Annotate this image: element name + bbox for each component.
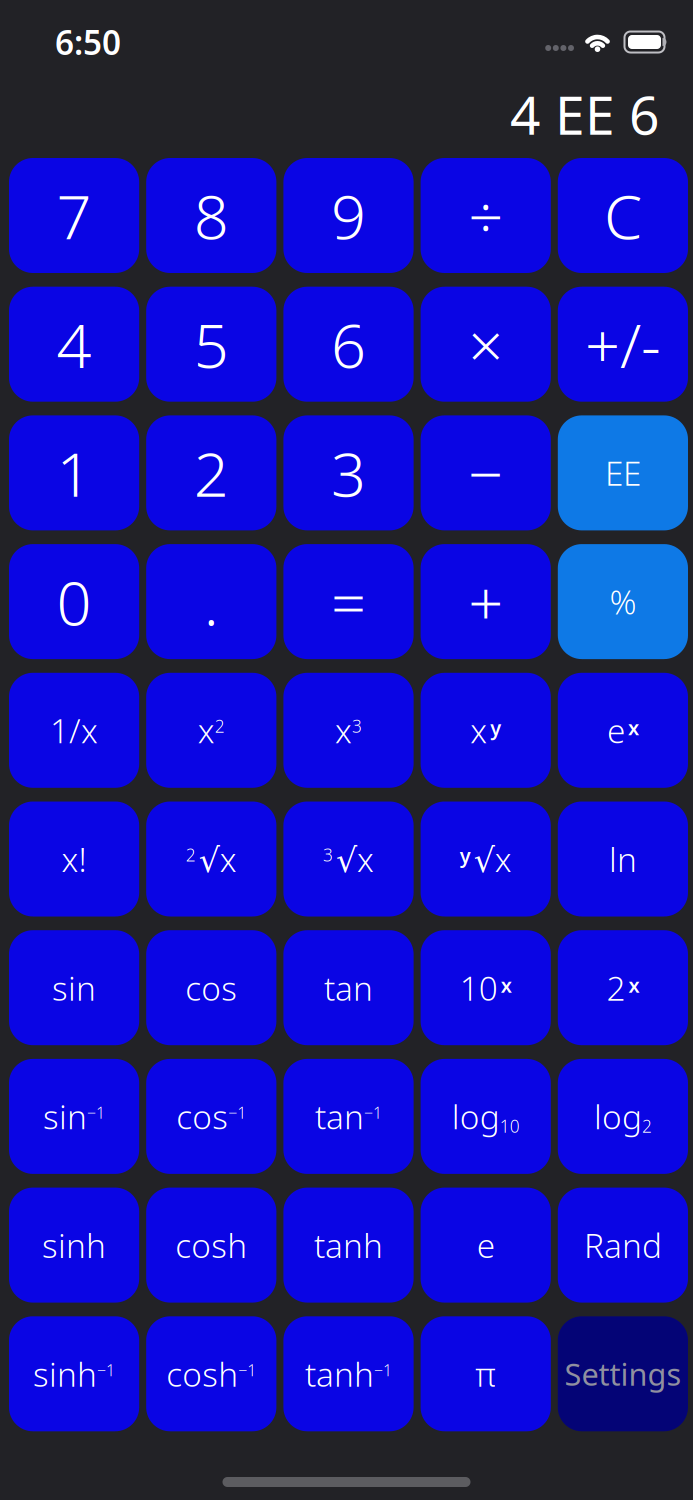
staticText: cos bbox=[185, 966, 237, 1010]
button[interactable]: 4 bbox=[9, 287, 139, 402]
button[interactable]: log2 bbox=[558, 1059, 688, 1174]
staticText: tan−1 bbox=[315, 1094, 382, 1139]
staticText: cosh−1 bbox=[166, 1352, 256, 1396]
staticText: + bbox=[468, 561, 503, 642]
button[interactable]: cosh bbox=[146, 1188, 276, 1303]
button[interactable]: 7 bbox=[9, 158, 139, 273]
button[interactable]: 1/x bbox=[9, 673, 139, 788]
staticText: = bbox=[331, 561, 366, 642]
staticText: 1 bbox=[57, 432, 92, 514]
staticText: 2 x bbox=[606, 966, 639, 1010]
staticText: x! bbox=[62, 837, 87, 881]
staticText: x2 bbox=[198, 708, 225, 752]
staticText: . bbox=[204, 561, 219, 642]
button[interactable]: tan bbox=[283, 930, 414, 1045]
staticText: cos−1 bbox=[176, 1094, 246, 1139]
button[interactable]: x! bbox=[9, 801, 139, 916]
button[interactable]: 6 bbox=[283, 287, 414, 402]
staticText: 2 √x bbox=[186, 837, 237, 881]
button[interactable]: π bbox=[421, 1316, 551, 1431]
button[interactable]: 5 bbox=[146, 287, 276, 402]
button[interactable]: x y bbox=[421, 673, 551, 788]
button[interactable]: 9 bbox=[283, 158, 414, 273]
staticText: 10 x bbox=[460, 966, 512, 1010]
staticText: 6:50 bbox=[55, 20, 121, 64]
staticText: 5 bbox=[194, 303, 229, 385]
button[interactable]: sin bbox=[9, 930, 139, 1045]
staticText: log10 bbox=[452, 1094, 520, 1139]
button[interactable]: 3 bbox=[283, 415, 414, 530]
button[interactable]: 2 bbox=[146, 415, 276, 530]
staticText: x3 bbox=[335, 708, 362, 752]
staticText: y √x bbox=[460, 837, 512, 881]
staticText: tan bbox=[324, 966, 373, 1010]
button[interactable]: − bbox=[421, 415, 551, 530]
staticText: +/- bbox=[585, 303, 661, 385]
button[interactable]: tanh−1 bbox=[283, 1316, 414, 1431]
staticText: 3 √x bbox=[323, 837, 374, 881]
staticText: 4 bbox=[57, 303, 92, 385]
button[interactable]: cos−1 bbox=[146, 1059, 276, 1174]
button[interactable]: 0 bbox=[9, 544, 139, 659]
staticText: × bbox=[468, 303, 503, 385]
button[interactable]: 2 x bbox=[558, 930, 688, 1045]
staticText: cosh bbox=[175, 1223, 247, 1267]
button[interactable]: ÷ bbox=[421, 158, 551, 273]
button[interactable]: x3 bbox=[283, 673, 414, 788]
staticText: % bbox=[609, 579, 636, 624]
staticText: x y bbox=[470, 708, 501, 752]
staticText: sin bbox=[52, 966, 96, 1010]
staticText: sinh−1 bbox=[33, 1352, 115, 1396]
staticText: Rand bbox=[584, 1223, 662, 1267]
staticText: tanh−1 bbox=[305, 1352, 392, 1396]
button[interactable]: cosh−1 bbox=[146, 1316, 276, 1431]
button[interactable]: EE bbox=[558, 415, 688, 530]
button[interactable]: sinh−1 bbox=[9, 1316, 139, 1431]
button[interactable]: × bbox=[421, 287, 551, 402]
button[interactable]: Rand bbox=[558, 1188, 688, 1303]
staticText: π bbox=[475, 1352, 496, 1396]
button[interactable]: tanh bbox=[283, 1188, 414, 1303]
staticText: 9 bbox=[331, 175, 366, 256]
staticText: tanh bbox=[314, 1223, 383, 1267]
staticText: 3 bbox=[331, 432, 366, 514]
staticText: 8 bbox=[194, 175, 229, 256]
staticText: − bbox=[468, 432, 503, 514]
staticText: 4 EE 6 bbox=[510, 79, 660, 149]
staticText: C bbox=[604, 175, 642, 256]
button[interactable]: . bbox=[146, 544, 276, 659]
button[interactable]: 1 bbox=[9, 415, 139, 530]
staticText: 7 bbox=[57, 175, 92, 256]
staticText: 1/x bbox=[50, 708, 98, 752]
staticText: e x bbox=[607, 708, 639, 752]
button[interactable]: sinh bbox=[9, 1188, 139, 1303]
button[interactable]: 10 x bbox=[421, 930, 551, 1045]
button[interactable]: e bbox=[421, 1188, 551, 1303]
staticText: sinh bbox=[42, 1223, 106, 1267]
button[interactable]: Settings bbox=[558, 1316, 688, 1431]
button[interactable]: y √x bbox=[421, 801, 551, 916]
staticText: Settings bbox=[564, 1353, 681, 1394]
button[interactable]: e x bbox=[558, 673, 688, 788]
staticText: ÷ bbox=[468, 175, 503, 256]
staticText: 6 bbox=[331, 303, 366, 385]
button[interactable]: x2 bbox=[146, 673, 276, 788]
button[interactable]: ln bbox=[558, 801, 688, 916]
staticText: 0 bbox=[57, 561, 92, 642]
button[interactable]: = bbox=[283, 544, 414, 659]
button[interactable]: % bbox=[558, 544, 688, 659]
button[interactable]: tan−1 bbox=[283, 1059, 414, 1174]
button[interactable]: 2 √x bbox=[146, 801, 276, 916]
button[interactable]: C bbox=[558, 158, 688, 273]
staticText: sin−1 bbox=[43, 1094, 105, 1139]
button[interactable]: 8 bbox=[146, 158, 276, 273]
button[interactable]: + bbox=[421, 544, 551, 659]
staticText: e bbox=[477, 1223, 495, 1267]
button[interactable]: cos bbox=[146, 930, 276, 1045]
button[interactable]: +/- bbox=[558, 287, 688, 402]
staticText: log2 bbox=[594, 1094, 652, 1139]
button[interactable]: 3 √x bbox=[283, 801, 414, 916]
staticText: ln bbox=[609, 837, 637, 881]
button[interactable]: log10 bbox=[421, 1059, 551, 1174]
button[interactable]: sin−1 bbox=[9, 1059, 139, 1174]
